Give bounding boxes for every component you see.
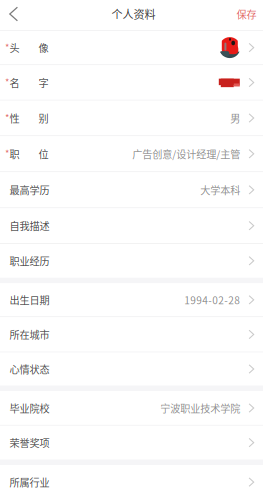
button[interactable]: *: [0, 136, 263, 171]
staticText: 1994-02-28: [184, 292, 240, 307]
staticText: 字: [38, 75, 48, 90]
button[interactable]: 毕业院校: [0, 391, 263, 425]
staticText: 荣誉奖项: [9, 435, 49, 450]
staticText: 像: [38, 40, 48, 55]
staticText: 保存: [236, 7, 256, 21]
button[interactable]: *: [0, 31, 263, 64]
button[interactable]: 出生日期: [0, 283, 263, 316]
staticText: 职: [9, 146, 19, 161]
staticText: 头: [9, 40, 19, 55]
staticText: 毕业院校: [9, 401, 49, 415]
staticText: 个人资料: [111, 6, 155, 22]
staticText: 出生日期: [9, 292, 49, 307]
staticText: 广告创意/设计经理/主管: [132, 146, 240, 161]
staticText: *: [5, 146, 9, 159]
button[interactable]: 心情状态: [0, 352, 263, 385]
staticText: 职业经历: [9, 253, 49, 268]
button[interactable]: 荣誉奖项: [0, 426, 263, 459]
staticText: 最高学历: [9, 182, 49, 197]
staticText: *: [5, 110, 9, 124]
staticText: 所属行业: [9, 475, 49, 489]
staticText: *: [5, 75, 9, 88]
staticText: 大学本科: [200, 182, 240, 197]
button[interactable]: 保存: [228, 1, 263, 29]
button[interactable]: 自我描述: [0, 208, 263, 243]
staticText: 位: [38, 146, 48, 161]
button[interactable]: 最高学历: [0, 172, 263, 207]
staticText: 宁波职业技术学院: [160, 401, 240, 415]
button[interactable]: 职业经历: [0, 244, 263, 278]
staticText: 别: [38, 111, 48, 125]
staticText: 名: [9, 75, 19, 90]
button[interactable]: 返回: [0, 0, 27, 30]
staticText: 自我描述: [9, 218, 49, 233]
button[interactable]: 所属行业: [0, 465, 263, 498]
button[interactable]: *: [0, 65, 263, 100]
staticText: *: [5, 40, 9, 53]
staticText: 性: [9, 111, 19, 125]
staticText: 男: [230, 111, 240, 125]
button[interactable]: 所在城市: [0, 317, 263, 352]
button[interactable]: *: [0, 101, 263, 135]
staticText: 心情状态: [9, 362, 49, 376]
staticText: 所在城市: [9, 327, 49, 342]
